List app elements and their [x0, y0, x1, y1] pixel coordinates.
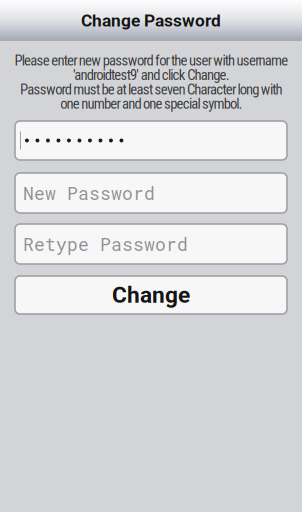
staticText: Retype Password [23, 232, 188, 256]
button[interactable]: Change [15, 276, 287, 314]
staticText: New Password [23, 181, 155, 205]
button[interactable]: Current password [15, 121, 287, 160]
staticText: Change [112, 282, 190, 308]
staticText: Change Password [81, 10, 221, 31]
button[interactable]: Retype Password [15, 224, 287, 264]
staticText: Please enter new password for the user w… [14, 52, 288, 112]
button[interactable]: New Password [15, 173, 287, 213]
